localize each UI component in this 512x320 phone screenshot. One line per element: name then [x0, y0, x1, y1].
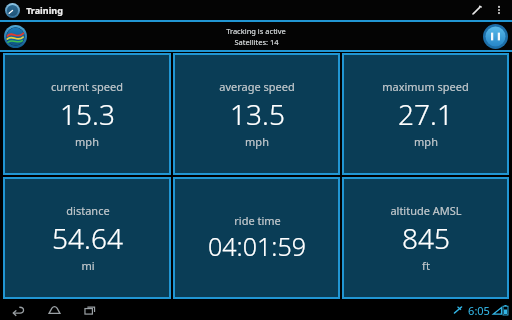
staticText: 04:01:59 [208, 229, 306, 263]
staticText: mph [245, 134, 269, 149]
staticText: 6:05 [468, 303, 490, 318]
staticText: 13.5 [230, 95, 285, 133]
button[interactable]: Back [0, 300, 36, 320]
staticText: mph [414, 134, 438, 149]
staticText: ft [422, 258, 430, 273]
staticText: average speed [219, 79, 295, 94]
button[interactable]: More options [489, 0, 509, 20]
button[interactable]: ride time [173, 177, 340, 299]
staticText: Training [26, 4, 63, 16]
button[interactable]: maximum speed [342, 53, 509, 175]
staticText: 15.3 [60, 95, 115, 133]
button[interactable]: distance [3, 177, 171, 299]
staticText: current speed [51, 79, 123, 94]
staticText: maximum speed [382, 79, 469, 94]
button[interactable]: Edit [463, 0, 489, 20]
staticText: Satellites: 14 [234, 37, 279, 47]
staticText: altitude AMSL [390, 203, 462, 218]
staticText: ride time [234, 213, 281, 228]
button[interactable]: Map [3, 24, 27, 48]
staticText: 27.1 [398, 95, 453, 133]
button[interactable]: average speed [173, 53, 340, 175]
staticText: 845 [402, 219, 450, 257]
staticText: Tracking is active [226, 26, 286, 36]
button[interactable]: altitude AMSL [342, 177, 509, 299]
staticText: 54.64 [52, 219, 123, 257]
staticText: distance [66, 203, 110, 218]
button[interactable]: Home [36, 300, 72, 320]
staticText: mph [75, 134, 99, 149]
button[interactable]: Pause tracking [482, 23, 508, 49]
button[interactable]: current speed [3, 53, 171, 175]
button[interactable]: Recent apps [72, 300, 108, 320]
staticText: mi [81, 258, 95, 273]
